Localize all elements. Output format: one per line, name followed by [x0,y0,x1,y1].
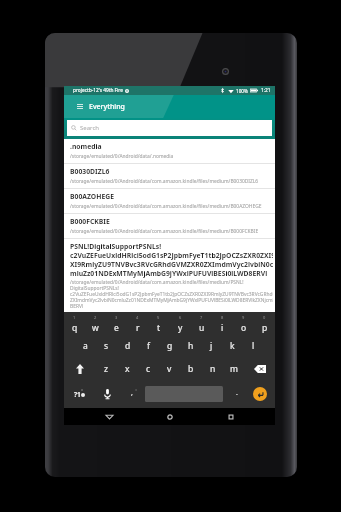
button[interactable]: y [170,321,191,334]
staticText: .nomedia [70,142,102,151]
button[interactable]: u [191,321,212,334]
staticText: d [125,340,131,352]
button[interactable]: PSNL!DigitalSupportPSNLs! [64,239,275,309]
staticText: 3 [115,315,118,320]
button[interactable]: n [202,357,223,380]
staticText: . [236,388,238,398]
staticText: u [199,322,205,334]
button[interactable]: s [96,334,117,357]
staticText: B000FCKBIE [70,217,110,226]
staticText: c2VuZEFueUxldHRlci5odG1sP2JpbmFyeT1tb2Jp… [70,251,273,260]
staticText: ?1 [74,390,81,399]
staticText: DigitalSupportPSNLs! [70,285,119,291]
button[interactable]: w [85,321,106,334]
staticText: y [178,322,183,334]
button[interactable]: l [243,334,264,357]
button[interactable]: . [229,380,245,408]
staticText: 5 [157,315,160,320]
staticText: n [210,363,216,375]
staticText: 7 [200,315,203,320]
staticText: 4 [136,315,139,320]
staticText: l [252,340,255,352]
button[interactable]: v [159,357,180,380]
button[interactable]: Symbols [64,380,94,408]
staticText: w [92,322,99,334]
button[interactable]: B000FCKBIE [64,214,275,239]
staticText: 0 [263,315,266,320]
button[interactable]: Search [67,120,272,136]
button[interactable]: h [180,334,201,357]
button[interactable]: g [159,334,180,357]
staticText: z [104,363,108,375]
staticText: m [230,363,238,375]
button[interactable]: i [212,321,233,334]
staticText: 9 [242,315,245,320]
staticText: t [157,322,161,334]
staticText: a [83,340,88,352]
button[interactable]: j [201,334,222,357]
staticText: Search [80,124,99,132]
staticText: c [146,363,151,375]
button[interactable]: r [127,321,148,334]
staticText: i [221,322,224,334]
button[interactable]: = [121,380,143,408]
staticText: e [114,322,119,334]
button[interactable]: o [233,321,254,334]
staticText: , [131,388,133,398]
button[interactable]: .nomedia [64,139,275,164]
staticText: o [241,322,247,334]
staticText: /storage/emulated/0/Android/data/com.ama… [70,203,262,210]
staticText: f [147,340,150,352]
staticText: 100% [236,88,248,94]
button[interactable]: Backspace [244,357,275,380]
staticText: v [167,363,172,375]
button[interactable]: b [180,357,201,380]
staticText: XI9RmlyZU9TNVBvc3RVcGRhdGVMZXR0ZXImdmVyc… [70,260,273,269]
staticText: Everything [89,102,125,112]
button[interactable]: e [106,321,127,334]
staticText: c2VuZEFueUxldHRlci5odG1sP2JpbmFyeT1tb2Jp… [70,291,273,297]
button[interactable]: f [138,334,159,357]
button[interactable]: Enter [245,380,275,408]
staticText: ZXImdmVyc2lvbiN0cmluZz01NDExMTMyMjAmbG9j… [70,297,273,303]
staticText: r [136,322,140,334]
button[interactable]: Open navigation drawer [64,95,89,118]
staticText: B00AZOHEGE [70,192,114,201]
staticText: /storage/emulated/0/Android/data/com.ama… [70,279,244,285]
staticText: mluZz01NDExMTMyMjAmbG9jYWxlPUFUVlBESi0lL… [70,269,268,278]
staticText: PSNL!DigitalSupportPSNLs! [70,242,162,251]
button[interactable]: q [64,321,85,334]
staticText: /storage/emulated/0/Android/data/.nomedi… [70,153,174,160]
staticText: s [104,340,109,352]
button[interactable]: Recent apps [214,408,248,425]
button[interactable]: z [95,357,116,380]
staticText: B0030DIZL6 [70,167,110,176]
staticText: k [230,340,235,352]
staticText: b [188,363,194,375]
staticText: p [262,322,268,334]
button[interactable]: B00AZOHEGE [64,189,275,214]
button[interactable]: Back [92,408,126,425]
staticText: 1:21 [261,87,271,94]
button[interactable]: Home [153,408,187,425]
button[interactable]: Shift [64,357,95,380]
staticText: 1 [73,315,76,320]
button[interactable]: m [223,357,244,380]
button[interactable]: c [138,357,159,380]
staticText: BERVl [70,303,84,309]
button[interactable]: B0030DIZL6 [64,164,275,189]
button[interactable]: Voice input [94,380,121,408]
staticText: 8 [221,315,224,320]
button[interactable]: k [222,334,243,357]
staticText: /storage/emulated/0/Android/data/com.ama… [70,228,259,235]
staticText: 6 [179,315,182,320]
staticText: = [135,387,138,392]
staticText: q [72,322,78,334]
button[interactable]: a [75,334,96,357]
staticText: g [167,340,173,352]
button[interactable]: t [148,321,169,334]
button[interactable]: p [254,321,275,334]
button[interactable]: x [117,357,138,380]
button[interactable]: d [117,334,138,357]
